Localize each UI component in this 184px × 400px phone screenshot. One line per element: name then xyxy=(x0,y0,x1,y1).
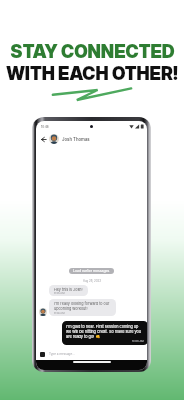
staticText: I'm glad to hear. First session coming u… xyxy=(66,324,144,339)
staticText: Load earlier messages xyxy=(73,269,110,273)
staticText: STAY CONNECTED xyxy=(10,41,175,63)
staticText: Josh Thomas xyxy=(62,137,90,142)
staticText: Type a message... xyxy=(49,352,75,356)
staticText: 10:03 AM xyxy=(132,339,144,342)
button[interactable]: Load earlier messages xyxy=(69,268,114,274)
staticText: Hey this is Josh! xyxy=(54,287,83,291)
staticText: 9:46 AM xyxy=(54,311,65,314)
staticText: I'm really looking forward to our upcomi… xyxy=(54,301,111,311)
staticText: 10:46 xyxy=(41,125,49,129)
button[interactable]: Add attachment xyxy=(40,352,45,357)
button[interactable]: Back xyxy=(39,135,48,144)
staticText: WITH EACH OTHER! xyxy=(6,63,178,85)
staticText: Aug 28, 2023 xyxy=(83,279,101,282)
staticText: 9:45 AM xyxy=(54,291,65,294)
